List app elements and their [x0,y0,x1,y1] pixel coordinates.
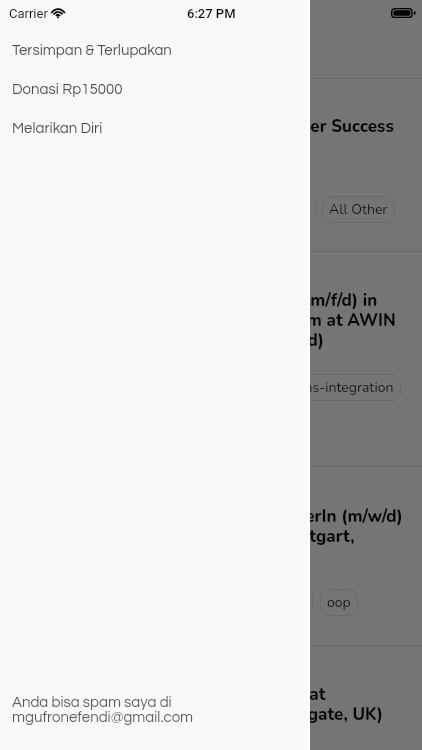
button[interactable]: Melarikan Diri [0,110,310,146]
button[interactable]: Systems-integration [259,374,401,401]
button[interactable]: All Other [322,196,395,223]
staticText: Anda bisa spam saya di [12,695,172,710]
button[interactable]: Support [251,196,316,223]
staticText: Senior Full Stack Software EntwicklerIn … [18,505,403,568]
button[interactable]: Anda bisa spam saya di [12,695,194,725]
staticText: Donasi Rp15000 [12,82,123,97]
button[interactable]: Tersimpan & Terlupakan [0,32,310,68]
staticText: Carrier [9,6,48,21]
staticText: oop [327,593,351,612]
staticText: Tersimpan & Terlupakan [12,43,172,58]
staticText: Senior Backend Platform Developer at Cog… [18,683,384,726]
staticText: Senior Engineering Manager Customer Succ… [18,115,394,138]
staticText: All Other [329,200,388,219]
other: Wi-Fi signal [51,6,65,20]
staticText: Senior Java Software Entwickler*in (m/f/… [18,289,396,352]
other: Battery full [391,7,417,19]
button[interactable]: Java [272,589,313,616]
button[interactable]: Donasi Rp15000 [0,71,310,107]
staticText: mgufronefendi@gmail.com [12,710,194,725]
staticText: 6:27 PM [187,6,236,21]
staticText: Melarikan Diri [12,121,103,136]
button[interactable]: oop [320,589,358,616]
staticText: Systems-integration [266,378,394,397]
